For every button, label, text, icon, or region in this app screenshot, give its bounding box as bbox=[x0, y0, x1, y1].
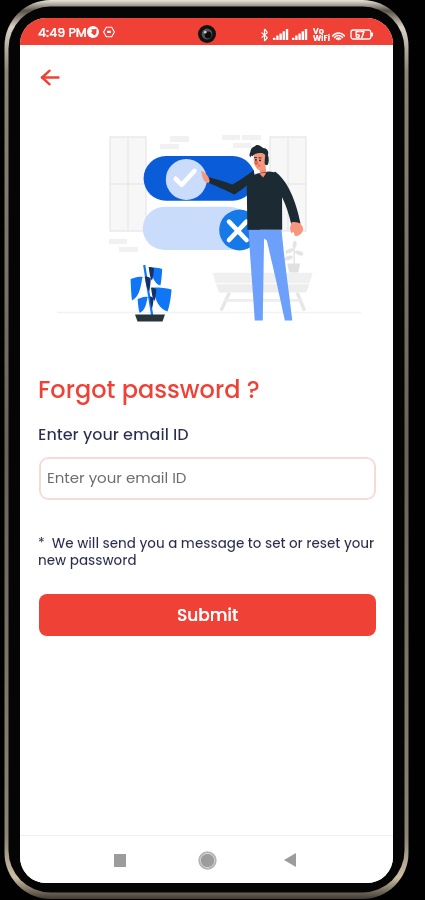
button[interactable]: Home bbox=[185, 838, 229, 882]
staticText: Forgot password ? bbox=[38, 373, 260, 407]
staticText: Vo bbox=[313, 26, 324, 37]
button[interactable]: Enter your email ID bbox=[39, 457, 376, 500]
button[interactable]: Back bbox=[268, 838, 312, 882]
staticText: 57 bbox=[355, 30, 365, 41]
button[interactable]: Recent apps bbox=[98, 838, 142, 882]
button[interactable]: Back bbox=[31, 59, 68, 96]
button[interactable]: Submit bbox=[39, 594, 376, 636]
staticText: WiFi bbox=[313, 33, 330, 44]
staticText: Submit bbox=[177, 603, 239, 627]
staticText: Enter your email ID bbox=[38, 423, 189, 445]
staticText: 4:49 PM bbox=[38, 24, 87, 41]
staticText: Enter your email ID bbox=[47, 467, 187, 488]
staticText: * We will send you a message to set or r… bbox=[38, 534, 378, 570]
